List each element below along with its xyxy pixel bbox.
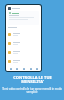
button[interactable] [6, 39, 41, 48]
button[interactable]: Add [21, 66, 26, 71]
button[interactable] [8, 11, 39, 25]
button[interactable] [6, 30, 41, 39]
button[interactable]: Stats [28, 66, 33, 71]
button[interactable]: Profile [34, 66, 39, 71]
staticText: CONTROLLA LE TUE MENSILITA' [13, 75, 52, 84]
button[interactable] [6, 48, 41, 57]
staticText: Tieni sotto controllo le tue spese mensi… [2, 87, 62, 93]
button[interactable]: Menu [8, 7, 11, 10]
button[interactable]: Search [14, 66, 19, 71]
button[interactable] [6, 57, 41, 66]
button[interactable]: Home [8, 66, 13, 71]
